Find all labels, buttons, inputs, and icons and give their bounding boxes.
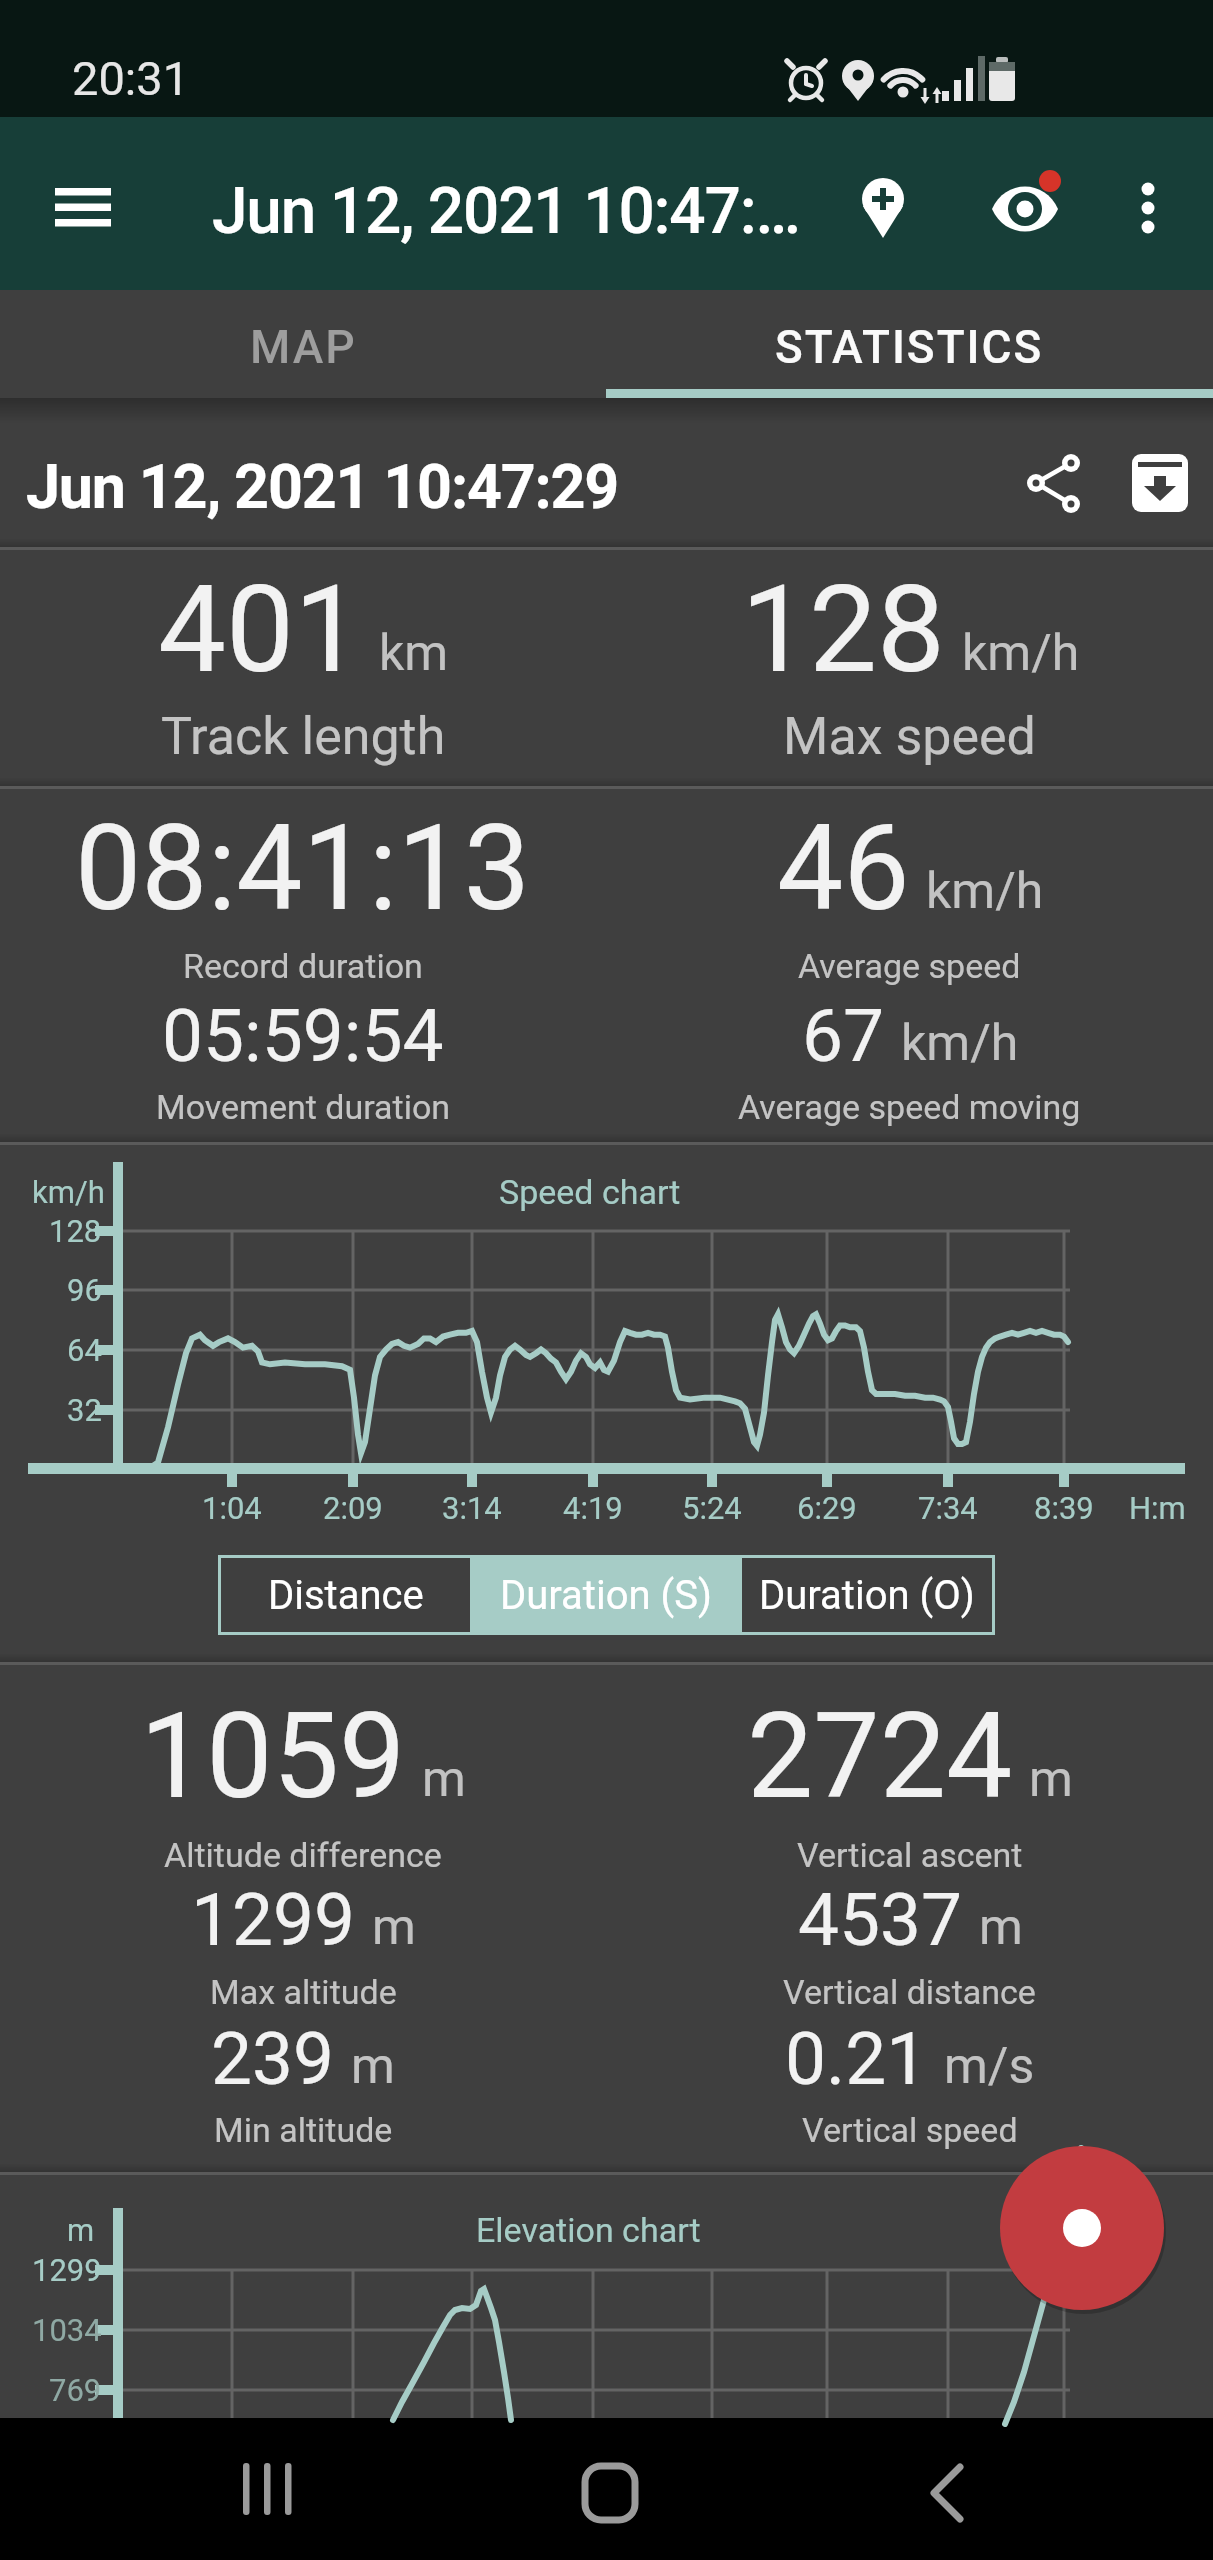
- staticText: Distance: [268, 1572, 424, 1619]
- staticText: Vertical ascent: [797, 1835, 1023, 1875]
- staticText: m: [351, 2037, 395, 2096]
- staticText: 8:39: [1034, 1490, 1094, 1526]
- staticText: 2724: [747, 1688, 1013, 1826]
- staticText: 2:09: [323, 1490, 383, 1526]
- staticText: Average speed moving: [738, 1087, 1081, 1127]
- staticText: 4537: [798, 1877, 963, 1963]
- staticText: 32: [67, 1392, 102, 1428]
- staticText: Max speed: [783, 706, 1036, 767]
- staticText: Jun 12, 2021 10:47:…: [212, 174, 800, 249]
- staticText: Duration (O): [759, 1572, 975, 1619]
- staticText: 08:41:13: [75, 800, 531, 938]
- staticText: 401: [158, 559, 363, 701]
- staticText: 239: [211, 2016, 335, 2102]
- staticText: Average speed: [798, 946, 1021, 986]
- button[interactable]: [34, 163, 130, 259]
- staticText: Jun 12, 2021 10:47:29: [26, 451, 619, 522]
- staticText: 1:04: [202, 1490, 262, 1526]
- button[interactable]: Duration (S): [473, 1555, 739, 1635]
- button[interactable]: [187, 2434, 347, 2544]
- staticText: 4:19: [563, 1490, 623, 1526]
- button[interactable]: [1000, 2146, 1164, 2310]
- staticText: 1059: [140, 1688, 406, 1826]
- staticText: 05:59:54: [162, 993, 444, 1079]
- staticText: Record duration: [183, 946, 423, 986]
- staticText: 1299: [32, 2252, 102, 2288]
- staticText: Movement duration: [156, 1087, 451, 1127]
- staticText: STATISTICS: [775, 320, 1044, 374]
- staticText: 3:14: [442, 1490, 502, 1526]
- staticText: m: [979, 1898, 1023, 1957]
- staticText: km/h: [962, 624, 1080, 683]
- button[interactable]: [1104, 163, 1192, 259]
- staticText: Altitude difference: [164, 1835, 442, 1875]
- button[interactable]: STATISTICS: [606, 293, 1213, 401]
- staticText: 96: [67, 1272, 102, 1308]
- staticText: m: [1029, 1750, 1073, 1809]
- staticText: Elevation chart: [476, 2210, 701, 2250]
- staticText: Duration (S): [500, 1572, 712, 1619]
- staticText: H:m: [1129, 1490, 1186, 1526]
- staticText: m: [67, 2212, 95, 2248]
- staticText: km/h: [926, 862, 1044, 921]
- staticText: Track length: [161, 706, 446, 767]
- staticText: km/h: [32, 1174, 105, 1210]
- button[interactable]: [1010, 437, 1102, 529]
- button[interactable]: [980, 160, 1076, 260]
- button[interactable]: [530, 2434, 690, 2544]
- button[interactable]: [840, 160, 928, 260]
- staticText: m/s: [944, 2037, 1035, 2096]
- button[interactable]: [1118, 437, 1210, 529]
- button[interactable]: MAP: [0, 293, 606, 401]
- staticText: m: [422, 1750, 466, 1809]
- staticText: MAP: [250, 320, 357, 374]
- staticText: 128: [49, 1213, 102, 1249]
- staticText: Vertical distance: [783, 1972, 1036, 2012]
- staticText: 20:31: [72, 51, 190, 106]
- staticText: 128: [741, 559, 946, 701]
- staticText: 5:24: [682, 1490, 742, 1526]
- button[interactable]: Distance: [218, 1555, 473, 1635]
- staticText: km: [379, 624, 449, 683]
- staticText: km/h: [901, 1014, 1019, 1073]
- staticText: 64: [67, 1332, 102, 1368]
- button[interactable]: [866, 2434, 1026, 2544]
- staticText: Min altitude: [214, 2110, 393, 2150]
- staticText: Speed chart: [499, 1172, 681, 1212]
- staticText: 1299: [191, 1877, 356, 1963]
- staticText: 67: [802, 993, 885, 1079]
- staticText: 46: [777, 800, 910, 938]
- staticText: 769: [49, 2372, 102, 2408]
- staticText: 6:29: [797, 1490, 857, 1526]
- staticText: m: [372, 1898, 416, 1957]
- staticText: 0.21: [785, 2016, 928, 2102]
- staticText: 7:34: [918, 1490, 978, 1526]
- staticText: Vertical speed: [802, 2110, 1018, 2150]
- staticText: 1034: [32, 2312, 102, 2348]
- staticText: Max altitude: [210, 1972, 397, 2012]
- button[interactable]: Duration (O): [739, 1555, 995, 1635]
